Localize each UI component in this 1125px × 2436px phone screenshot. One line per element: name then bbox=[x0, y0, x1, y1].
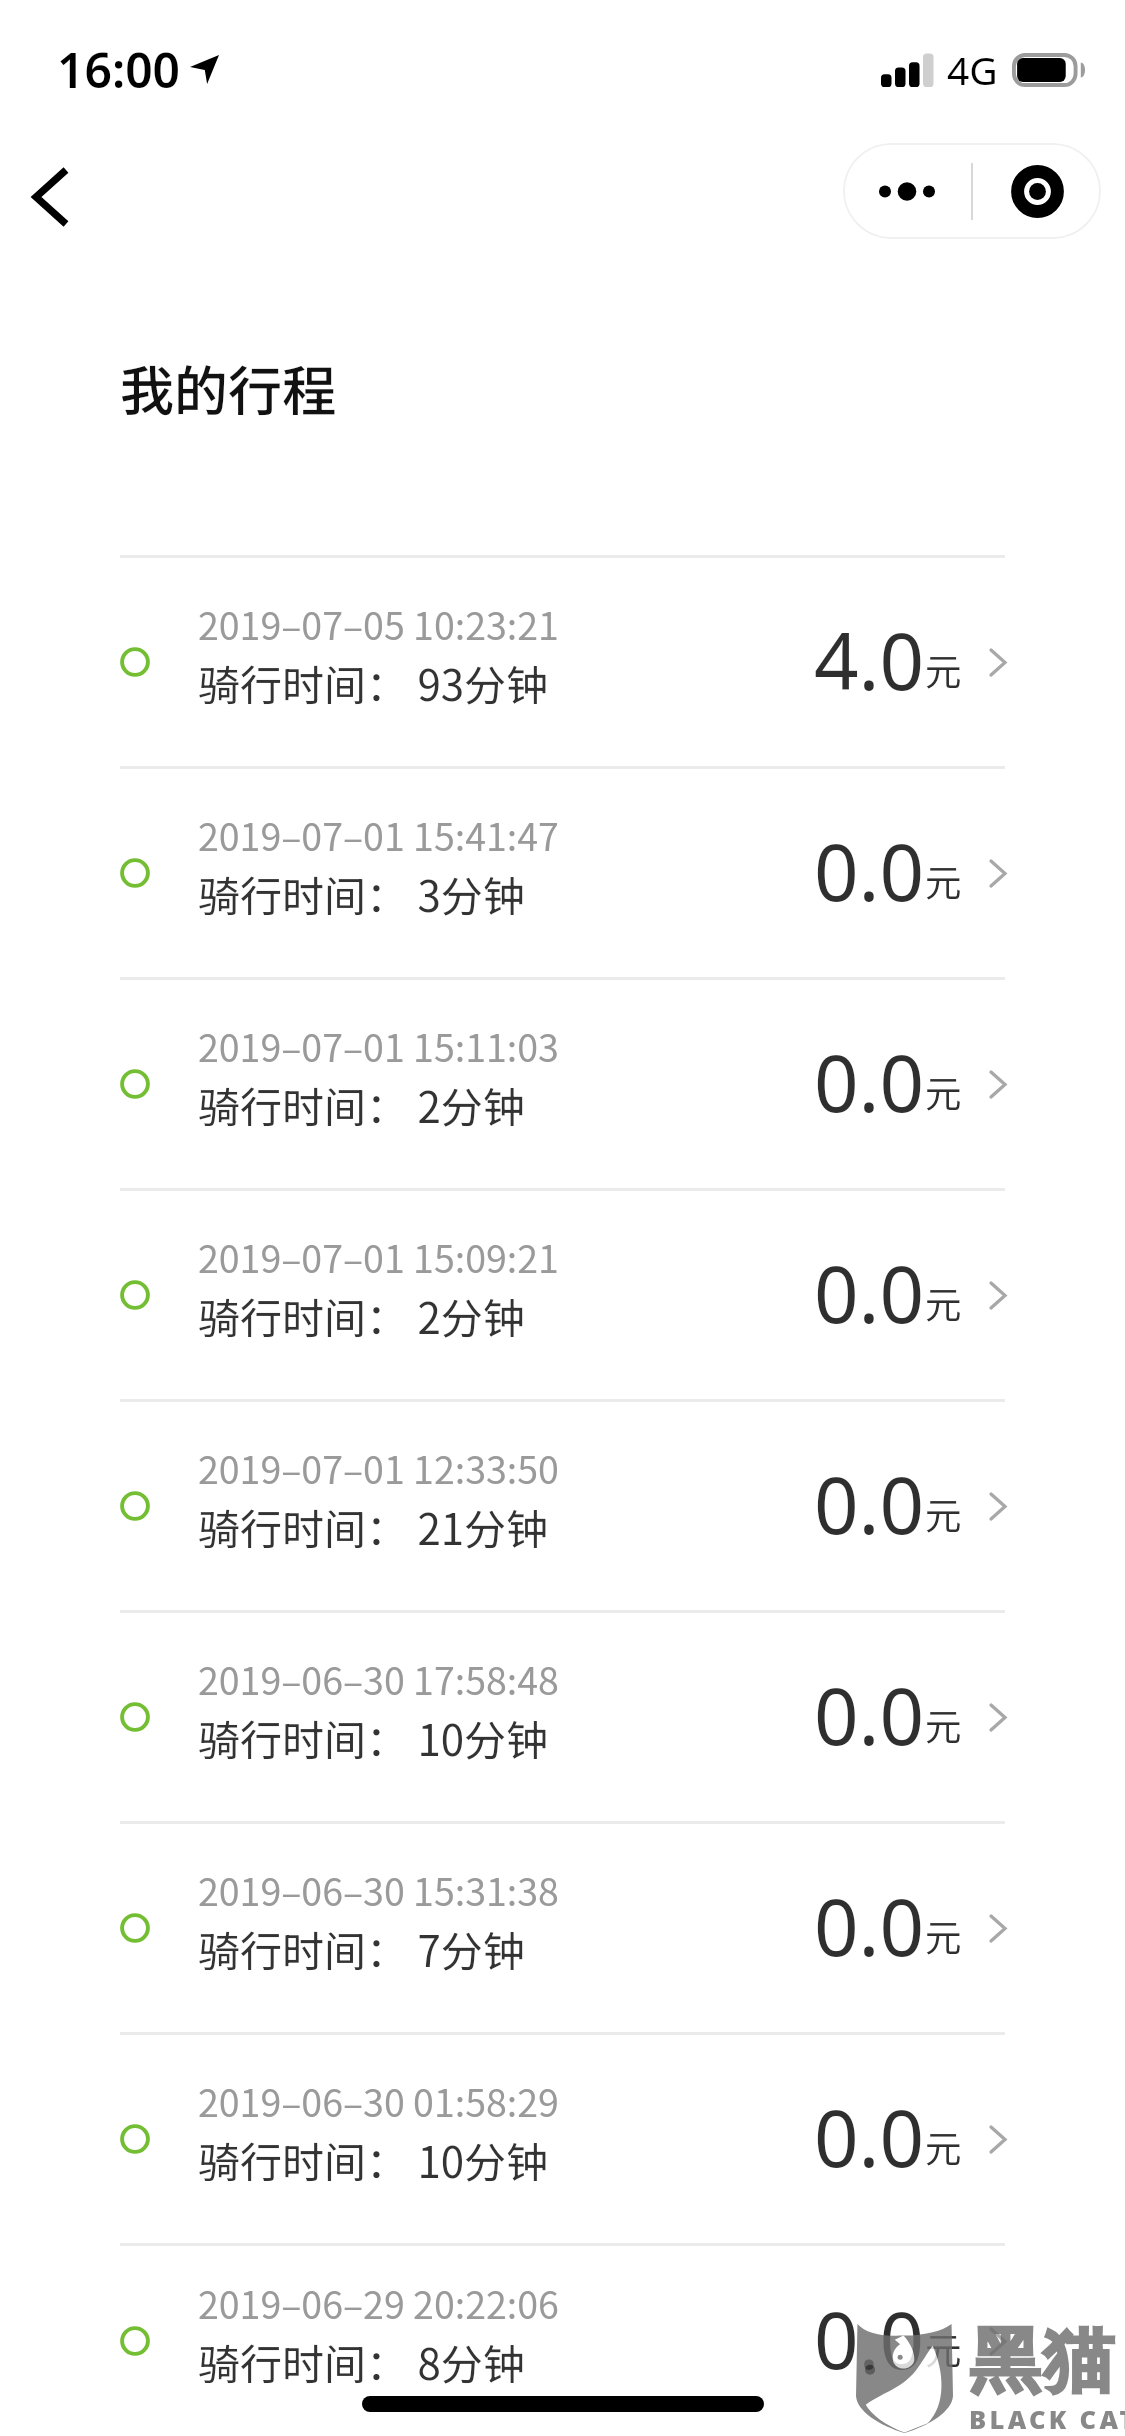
button[interactable]: 2019–06–30 15:31:38 bbox=[0, 1824, 1125, 2032]
staticText: 2019–07–01 12:33:50 bbox=[198, 1440, 559, 1494]
staticText: 2019–07–05 10:23:21 bbox=[198, 596, 559, 650]
button[interactable]: 2019–07–01 15:11:03 bbox=[0, 980, 1125, 1188]
staticText: 元 bbox=[925, 2120, 962, 2173]
staticText: 元 bbox=[925, 2322, 962, 2375]
staticText: 0.0 bbox=[814, 1240, 925, 1346]
staticText: BLACK CAT bbox=[969, 2402, 1125, 2436]
staticText: 2019–07–01 15:11:03 bbox=[198, 1018, 559, 1072]
staticText: 我的行程 bbox=[120, 348, 336, 426]
staticText: 4G bbox=[947, 43, 998, 96]
staticText: 4.0 bbox=[814, 607, 925, 713]
button[interactable]: 2019–07–01 15:41:47 bbox=[0, 769, 1125, 977]
staticText: 黑猫 bbox=[968, 2317, 1115, 2406]
button[interactable]: 2019–06–29 20:22:06 bbox=[0, 2246, 1125, 2436]
staticText: 骑行时间： 3分钟 bbox=[198, 863, 525, 924]
staticText: 骑行时间： 8分钟 bbox=[198, 2331, 525, 2392]
staticText: 元 bbox=[925, 1487, 962, 1540]
staticText: 2019–07–01 15:41:47 bbox=[198, 807, 559, 861]
button[interactable]: More options bbox=[843, 143, 971, 239]
button[interactable]: 2019–07–01 12:33:50 bbox=[0, 1402, 1125, 1610]
staticText: 0.0 bbox=[814, 1873, 925, 1979]
staticText: 2019–06–30 17:58:48 bbox=[198, 1651, 559, 1705]
staticText: 骑行时间： 21分钟 bbox=[198, 1496, 549, 1557]
staticText: 骑行时间： 2分钟 bbox=[198, 1285, 525, 1346]
staticText: 骑行时间： 10分钟 bbox=[198, 1707, 549, 1768]
staticText: 0.0 bbox=[814, 1662, 925, 1768]
staticText: 元 bbox=[925, 1065, 962, 1118]
staticText: 骑行时间： 10分钟 bbox=[198, 2129, 549, 2190]
staticText: 0.0 bbox=[814, 1451, 925, 1557]
staticText: 元 bbox=[925, 1909, 962, 1962]
staticText: 16:00 bbox=[57, 37, 181, 102]
staticText: 0.0 bbox=[814, 2084, 925, 2190]
staticText: 2019–07–01 15:09:21 bbox=[198, 1229, 559, 1283]
staticText: 骑行时间： 7分钟 bbox=[198, 1918, 525, 1979]
button[interactable]: Back bbox=[0, 146, 102, 248]
staticText: 元 bbox=[925, 854, 962, 907]
staticText: 0.0 bbox=[814, 1029, 925, 1135]
staticText: 0.0 bbox=[814, 2286, 925, 2392]
staticText: 2019–06–30 01:58:29 bbox=[198, 2073, 559, 2127]
staticText: 0.0 bbox=[814, 818, 925, 924]
staticText: 骑行时间： 93分钟 bbox=[198, 652, 549, 713]
button[interactable]: 2019–07–01 15:09:21 bbox=[0, 1191, 1125, 1399]
staticText: 元 bbox=[925, 643, 962, 696]
staticText: 2019–06–30 15:31:38 bbox=[198, 1862, 559, 1916]
button[interactable]: 2019–06–30 01:58:29 bbox=[0, 2035, 1125, 2243]
staticText: 骑行时间： 2分钟 bbox=[198, 1074, 525, 1135]
button[interactable]: Close mini program bbox=[973, 143, 1101, 239]
staticText: 元 bbox=[925, 1276, 962, 1329]
staticText: 2019–06–29 20:22:06 bbox=[198, 2275, 559, 2329]
button[interactable]: 2019–06–30 17:58:48 bbox=[0, 1613, 1125, 1821]
staticText: 元 bbox=[925, 1698, 962, 1751]
button[interactable]: 2019–07–05 10:23:21 bbox=[0, 558, 1125, 766]
